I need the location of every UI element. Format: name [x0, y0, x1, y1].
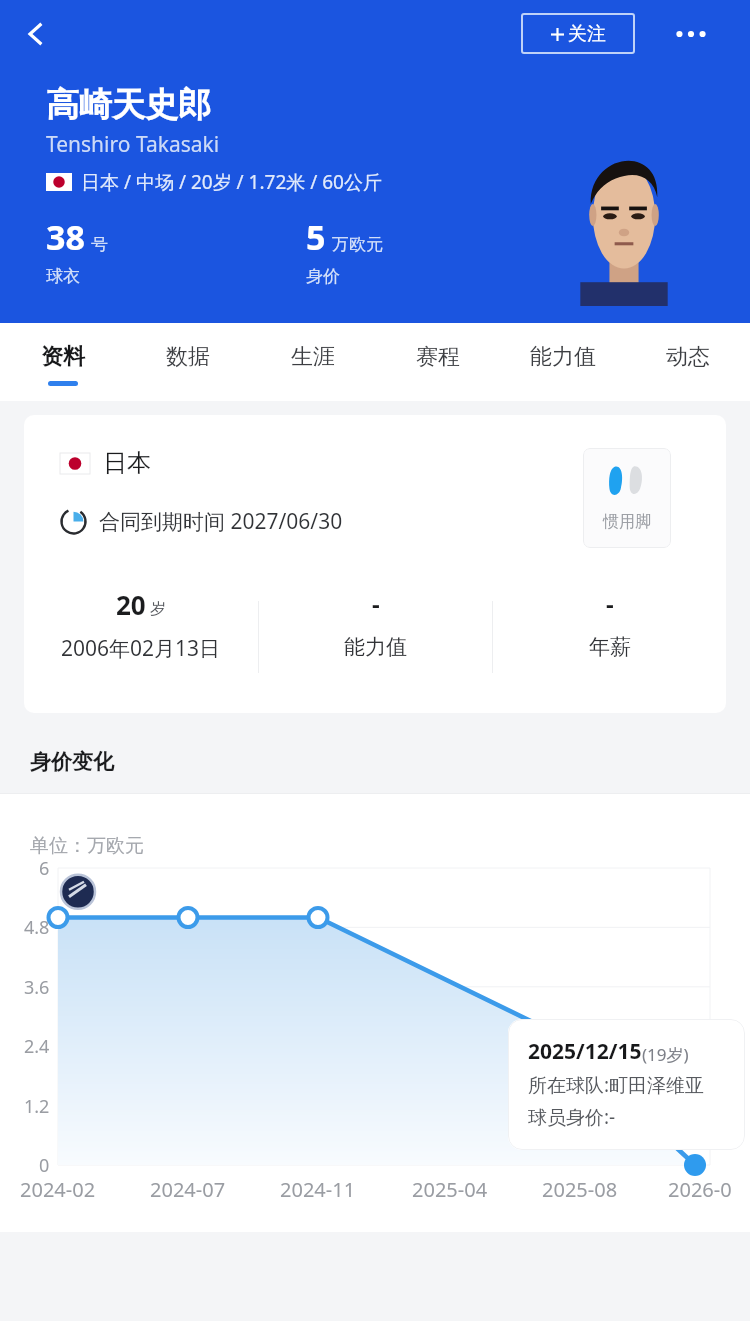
staticText: -: [372, 587, 380, 620]
button[interactable]: 日本: [24, 415, 726, 713]
button[interactable]: 资料: [0, 323, 125, 401]
staticText: 2025-08: [542, 1176, 618, 1203]
staticText: 身价变化: [30, 749, 114, 775]
staticText: 关注: [568, 22, 606, 46]
staticText: 身价: [306, 266, 340, 287]
staticText: 2006年02月13日: [61, 634, 221, 663]
staticText: 球员身价:-: [528, 1104, 616, 1130]
staticText: 所在球队:町田泽维亚: [528, 1072, 705, 1098]
staticText: 2025/12/15: [528, 1037, 642, 1066]
button[interactable]: 关注: [521, 13, 635, 54]
button[interactable]: Back: [8, 6, 64, 62]
staticText: 2.4: [24, 1034, 50, 1059]
staticText: 年薪: [589, 634, 631, 660]
staticText: 6: [39, 856, 50, 881]
staticText: 2024-11: [280, 1176, 356, 1203]
staticText: 球衣: [46, 266, 80, 287]
staticText: (19岁): [642, 1043, 689, 1066]
staticText: 生涯: [291, 343, 335, 371]
staticText: 高崎天史郎: [46, 84, 211, 126]
staticText: 2024-07: [150, 1176, 226, 1203]
button[interactable]: More options: [665, 8, 717, 60]
button[interactable]: 惯用脚: [583, 448, 671, 548]
staticText: 4.8: [24, 915, 50, 940]
staticText: Tenshiro Takasaki: [46, 130, 220, 159]
staticText: 数据: [166, 343, 210, 371]
staticText: 2026-0: [668, 1176, 732, 1203]
button[interactable]: 动态: [625, 323, 750, 401]
staticText: 合同到期时间 2027/06/30: [99, 507, 343, 536]
button[interactable]: 生涯: [250, 323, 375, 401]
staticText: 日本: [103, 448, 151, 478]
staticText: 资料: [41, 343, 85, 371]
staticText: 能力值: [344, 634, 407, 660]
staticText: 万欧元: [332, 234, 383, 255]
staticText: 3.6: [24, 975, 50, 1000]
staticText: 0: [39, 1153, 50, 1178]
button[interactable]: 数据: [125, 323, 250, 401]
staticText: 1.2: [24, 1094, 50, 1119]
staticText: -: [606, 587, 614, 620]
staticText: 2024-02: [20, 1176, 96, 1203]
staticText: 动态: [666, 343, 710, 371]
staticText: 惯用脚: [603, 512, 651, 532]
staticText: 号: [91, 234, 108, 255]
staticText: 2025-04: [412, 1176, 488, 1203]
staticText: 单位：万欧元: [30, 834, 144, 858]
staticText: 38: [46, 214, 85, 260]
staticText: 赛程: [416, 343, 460, 371]
button[interactable]: 能力值: [500, 323, 625, 401]
staticText: 岁: [150, 599, 166, 619]
staticText: 能力值: [530, 343, 596, 371]
staticText: 5: [306, 214, 326, 260]
button[interactable]: 赛程: [375, 323, 500, 401]
staticText: 日本 / 中场 / 20岁 / 1.72米 / 60公斤: [81, 169, 382, 195]
staticText: 20: [116, 587, 146, 622]
